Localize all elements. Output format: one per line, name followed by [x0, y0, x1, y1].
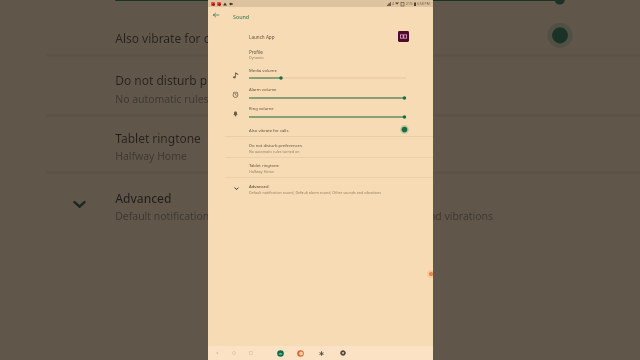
staticText: 21% [406, 1, 413, 6]
button[interactable] [225, 46, 428, 62]
button[interactable] [225, 29, 428, 46]
staticText: No automatic rules turned on [249, 149, 300, 154]
button[interactable] [225, 179, 428, 196]
staticText: Also vibrate for calls [115, 31, 230, 48]
button[interactable]: Launch App [398, 31, 409, 42]
staticText: Advanced [249, 184, 269, 190]
staticText: Sound [233, 13, 250, 20]
staticText: No automatic rules turned on [115, 91, 261, 105]
button[interactable] [225, 62, 428, 81]
button[interactable]: Back [211, 347, 223, 359]
button[interactable] [225, 138, 428, 155]
staticText: Halfway Home [249, 169, 274, 174]
button[interactable] [47, 0, 627, 8]
button[interactable] [47, 120, 627, 168]
button[interactable]: Home [228, 347, 240, 359]
staticText: Default notification sound, Default alar… [115, 208, 496, 223]
button[interactable]: Messages [274, 347, 286, 359]
staticText: 6:58 PM [417, 1, 430, 6]
button[interactable] [47, 177, 627, 225]
button[interactable]: Assistant [315, 347, 327, 359]
staticText: Profile [249, 49, 263, 55]
button[interactable] [47, 17, 627, 54]
staticText: Also vibrate for calls [249, 128, 289, 134]
staticText: Tablet ringtone [249, 163, 279, 169]
button[interactable]: Back [209, 8, 223, 22]
button[interactable]: Settings [337, 347, 349, 359]
staticText: Alarm volume [249, 87, 277, 93]
staticText: Launch App [249, 34, 275, 40]
staticText: Halfway Home [115, 148, 187, 163]
button[interactable] [225, 159, 428, 176]
button[interactable] [47, 60, 627, 108]
staticText: Do not disturb preferences [249, 143, 302, 149]
staticText: Tablet ringtone [115, 131, 201, 148]
button[interactable] [225, 81, 428, 100]
button[interactable]: Browser [294, 347, 306, 359]
staticText: 4 [392, 1, 394, 6]
staticText: Do not disturb preferences [115, 74, 267, 91]
staticText: Media volume [249, 68, 277, 74]
staticText: Advanced [115, 191, 172, 208]
staticText: Ring volume [249, 106, 274, 112]
button[interactable] [225, 123, 428, 136]
staticText: Default notification sound, Default alar… [249, 190, 382, 195]
staticText: Dynamic [249, 55, 264, 60]
button[interactable]: Recent apps [245, 347, 257, 359]
button[interactable] [225, 101, 428, 120]
